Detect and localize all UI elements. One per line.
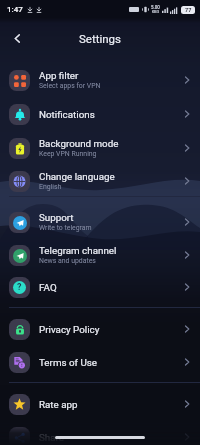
button[interactable]: ? <box>0 270 200 304</box>
button[interactable]: App filter <box>0 63 200 97</box>
staticText: Share <box>39 432 64 443</box>
staticText: 5.00 <box>151 5 160 10</box>
staticText: Rate app <box>39 399 78 410</box>
staticText: Support <box>39 212 74 223</box>
staticText: Notifications <box>39 109 95 120</box>
staticText: Write to telegram <box>39 224 92 232</box>
staticText: Select apps for VPN <box>39 82 101 90</box>
button[interactable]: Privacy Policy <box>0 312 200 346</box>
staticText: News and updates <box>39 257 96 265</box>
staticText: 77 <box>185 7 192 13</box>
staticText: FAQ <box>39 282 57 293</box>
button[interactable]: Notifications <box>0 97 200 131</box>
button[interactable]: Terms of Use <box>0 345 200 379</box>
button[interactable]: Back <box>4 25 30 51</box>
button[interactable]: Background mode <box>0 131 200 165</box>
staticText: Change language <box>39 171 115 182</box>
staticText: KB/S <box>152 10 160 14</box>
staticText: Settings <box>79 32 121 45</box>
staticText: Privacy Policy <box>39 324 100 335</box>
staticText: App filter <box>39 70 79 81</box>
staticText: Keep VPN Running <box>39 150 97 158</box>
staticText: Terms of Use <box>39 357 97 368</box>
button[interactable]: Rate app <box>0 387 200 421</box>
staticText: Background mode <box>39 138 119 149</box>
staticText: ? <box>17 282 22 293</box>
button[interactable]: Share <box>0 420 200 445</box>
button[interactable]: Telegram channel <box>0 238 200 272</box>
button[interactable]: Support <box>0 205 200 239</box>
staticText: Telegram channel <box>39 245 117 256</box>
staticText: English <box>39 183 62 191</box>
button[interactable]: Change language <box>0 164 200 198</box>
staticText: 1:47 <box>7 5 23 14</box>
